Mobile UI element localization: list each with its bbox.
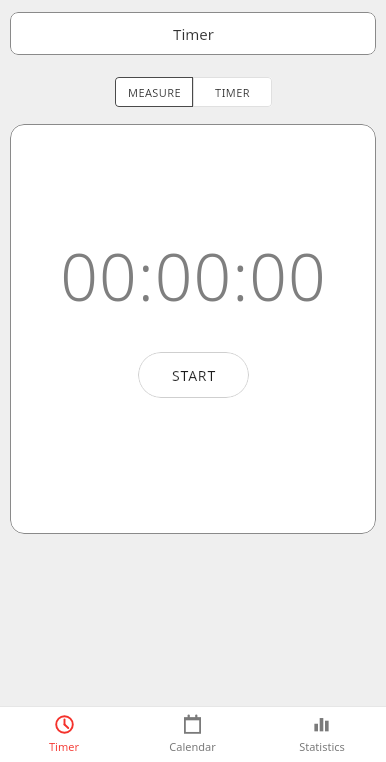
staticText: Statistics bbox=[299, 739, 345, 754]
staticText: TIMER bbox=[215, 85, 250, 100]
button[interactable]: TIMER bbox=[193, 77, 272, 107]
button[interactable]: Statistics bbox=[257, 707, 386, 762]
staticText: Timer bbox=[49, 739, 79, 754]
button[interactable]: Timer bbox=[10, 12, 376, 55]
button[interactable]: Calendar bbox=[128, 707, 257, 762]
staticText: 00:00:00 bbox=[60, 230, 327, 320]
staticText: Timer bbox=[173, 24, 214, 44]
staticText: MEASURE bbox=[128, 85, 181, 100]
staticText: START bbox=[172, 366, 216, 385]
button[interactable]: Timer bbox=[0, 707, 128, 762]
button[interactable]: START bbox=[138, 352, 249, 398]
staticText: Calendar bbox=[169, 739, 216, 754]
button[interactable]: MEASURE bbox=[115, 77, 193, 107]
